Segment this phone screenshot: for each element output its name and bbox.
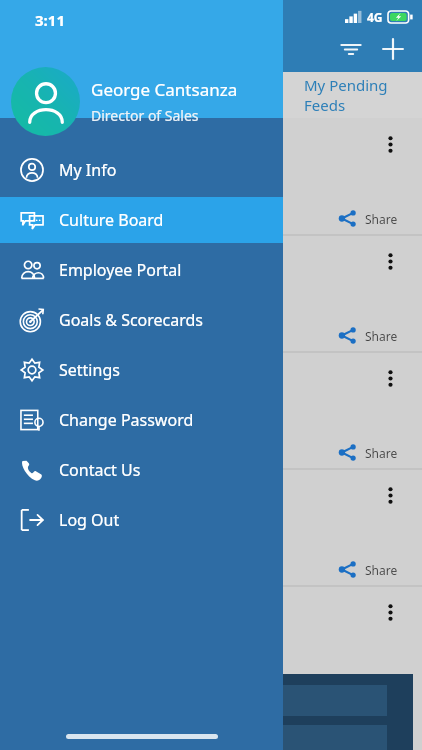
- button[interactable]: Share: [339, 210, 398, 227]
- button[interactable]: More options: [0, 587, 422, 704]
- staticText: Employee Portal: [59, 259, 182, 281]
- staticText: Share: [365, 445, 398, 461]
- button[interactable]: Add post: [372, 28, 414, 70]
- staticText: Director of Sales: [91, 106, 199, 125]
- button[interactable]: More options: [0, 353, 422, 470]
- button[interactable]: My Info: [0, 147, 283, 193]
- button[interactable]: More options: [0, 119, 422, 236]
- button[interactable]: Log Out: [0, 497, 283, 543]
- button[interactable]: More options: [377, 482, 403, 508]
- staticText: George Cantsanza: [91, 78, 238, 101]
- button[interactable]: Settings: [0, 347, 283, 393]
- staticText: Settings: [59, 359, 120, 381]
- button[interactable]: Culture Board: [0, 197, 283, 243]
- staticText: Share: [365, 562, 398, 578]
- button[interactable]: Change Password: [0, 397, 283, 443]
- button[interactable]: Employee Portal: [0, 247, 283, 293]
- button[interactable]: [11, 67, 80, 136]
- button[interactable]: Share: [339, 327, 398, 344]
- staticText: Culture Board: [59, 209, 164, 231]
- button[interactable]: More options: [377, 248, 403, 274]
- button[interactable]: More options: [0, 470, 422, 587]
- staticText: 4G: [367, 9, 383, 25]
- staticText: Share: [365, 211, 398, 227]
- button[interactable]: More options: [377, 599, 403, 625]
- button[interactable]: Contact Us: [0, 447, 283, 493]
- button[interactable]: Share: [339, 444, 398, 461]
- staticText: 3:11: [35, 10, 65, 30]
- staticText: Goals & Scorecards: [59, 309, 204, 331]
- staticText: My Info: [59, 159, 117, 181]
- button[interactable]: Goals & Scorecards: [0, 297, 283, 343]
- button[interactable]: More options: [0, 236, 422, 353]
- button[interactable]: More options: [377, 365, 403, 391]
- staticText: Contact Us: [59, 459, 141, 481]
- button[interactable]: More options: [377, 131, 403, 157]
- staticText: h.in: [255, 690, 284, 712]
- button[interactable]: Share: [339, 561, 398, 578]
- button[interactable]: Filter: [330, 28, 372, 70]
- staticText: Change Password: [59, 409, 194, 431]
- staticText: Log Out: [59, 509, 120, 531]
- staticText: My Pending Feeds: [304, 75, 422, 115]
- button[interactable]: My Pending Feeds: [0, 72, 422, 118]
- staticText: Share: [365, 328, 398, 344]
